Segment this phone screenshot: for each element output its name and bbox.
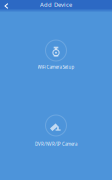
button[interactable]: DVR/NVR/IP Camera: [0, 115, 112, 147]
staticText: DVR/NVR/IP Camera: [35, 141, 77, 147]
staticText: Add Device: [40, 0, 72, 8]
button[interactable]: WiFi Camera Setup: [0, 40, 112, 70]
button[interactable]: Back: [2, 0, 11, 11]
staticText: WiFi Camera Setup: [37, 64, 74, 70]
